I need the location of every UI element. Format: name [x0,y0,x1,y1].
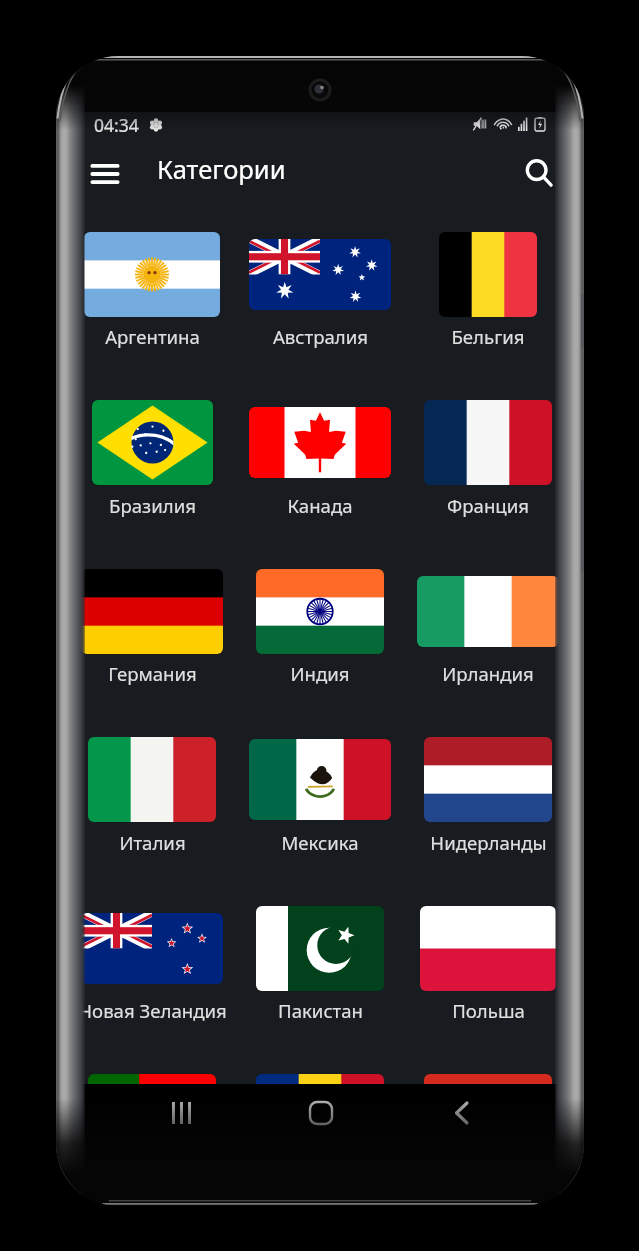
staticText: Бразилия [109,493,196,518]
staticText: Аргентина [105,324,200,349]
staticText: Бельгия [451,324,525,349]
button[interactable]: Back [433,1085,489,1141]
staticText: Новая Зеландия [81,998,227,1023]
button[interactable] [249,400,391,568]
button[interactable] [249,906,391,1074]
staticText: Пакистан [278,998,363,1023]
staticText: Мексика [281,830,359,855]
staticText: Нидерланды [430,830,547,855]
staticText: Канада [287,493,353,518]
button[interactable]: Home [293,1085,349,1141]
button[interactable] [417,906,559,1074]
button[interactable] [81,400,223,568]
staticText: Франция [447,493,529,518]
button[interactable] [249,569,391,737]
button[interactable] [417,737,559,905]
button[interactable] [81,1074,223,1084]
staticText: Польша [452,998,525,1023]
staticText: Австралия [273,324,368,349]
button[interactable] [249,1074,391,1084]
staticText: Германия [108,661,197,686]
button[interactable]: Open navigation menu [81,150,129,198]
button[interactable]: Search [515,149,559,197]
button[interactable] [81,906,223,1074]
button[interactable] [417,232,559,400]
staticText: 04:34 [94,113,139,137]
button[interactable] [249,737,391,905]
staticText: Категории [157,152,286,187]
button[interactable] [417,569,559,737]
button[interactable] [81,737,223,905]
staticText: Ирландия [442,661,534,686]
button[interactable] [81,232,223,400]
button[interactable] [417,400,559,568]
staticText: Италия [119,830,186,855]
button[interactable] [81,569,223,737]
button[interactable] [417,1074,559,1084]
button[interactable]: Recent apps [153,1085,209,1141]
staticText: Индия [290,661,350,686]
button[interactable] [249,232,391,400]
